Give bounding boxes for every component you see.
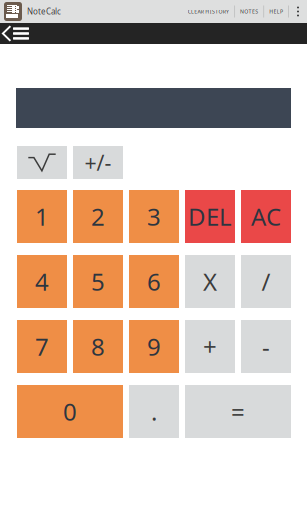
button[interactable]: 2	[73, 190, 123, 243]
staticText: 2	[91, 201, 105, 232]
button[interactable]: 1	[17, 190, 67, 243]
button[interactable]: CLEAR HISTORY	[183, 0, 234, 23]
staticText: 6	[147, 266, 161, 297]
staticText: +/-	[84, 148, 111, 177]
staticText: NoteCalc	[27, 6, 61, 17]
button[interactable]: DEL	[185, 190, 235, 243]
button[interactable]: Square root	[17, 146, 67, 179]
staticText: /	[261, 266, 270, 297]
staticText: 5	[91, 266, 105, 297]
staticText: X	[203, 266, 217, 297]
staticText: 7	[35, 331, 49, 362]
staticText: NOTES	[240, 8, 258, 15]
button[interactable]: 8	[73, 320, 123, 373]
staticText: 0	[63, 396, 77, 427]
staticText: 9	[147, 331, 161, 362]
button[interactable]: HELP	[264, 0, 288, 23]
staticText: 1	[35, 201, 49, 232]
staticText: -	[262, 331, 270, 362]
button[interactable]: 9	[129, 320, 179, 373]
button[interactable]: AC	[241, 190, 291, 243]
button[interactable]: 3	[129, 190, 179, 243]
button[interactable]: X	[185, 255, 235, 308]
button[interactable]: +	[185, 320, 235, 373]
button[interactable]: +/-	[73, 146, 123, 179]
staticText: CLEAR HISTORY	[188, 8, 229, 15]
button[interactable]: 5	[73, 255, 123, 308]
button[interactable]: Back	[1, 23, 12, 44]
button[interactable]: .	[129, 385, 179, 438]
staticText: 3	[147, 201, 161, 232]
staticText: 8	[91, 331, 105, 362]
button[interactable]: 4	[17, 255, 67, 308]
button[interactable]: 7	[17, 320, 67, 373]
button[interactable]: Menu	[12, 23, 30, 44]
staticText: DEL	[188, 201, 232, 232]
staticText: AC	[251, 201, 281, 232]
staticText: .	[151, 396, 157, 427]
button[interactable]: -	[241, 320, 291, 373]
button[interactable]: More options	[289, 0, 307, 23]
button[interactable]: 0	[17, 385, 123, 438]
button[interactable]: =	[185, 385, 291, 438]
button[interactable]: /	[241, 255, 291, 308]
button[interactable]: NOTES	[235, 0, 263, 23]
staticText: HELP	[269, 8, 283, 15]
staticText: 4	[35, 266, 49, 297]
button[interactable]: 6	[129, 255, 179, 308]
staticText: +	[203, 331, 217, 362]
staticText: =	[231, 396, 245, 427]
